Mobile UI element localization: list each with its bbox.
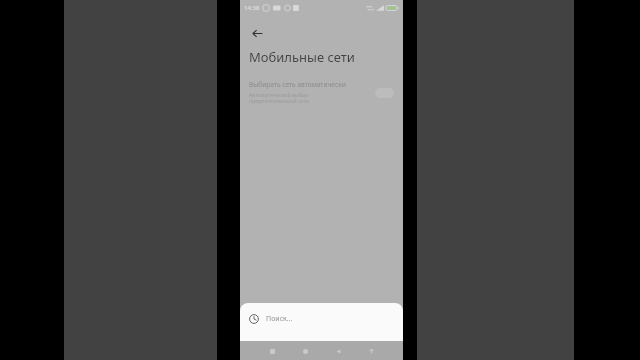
button[interactable]: Back: [331, 344, 345, 358]
button[interactable]: Home: [298, 344, 312, 358]
button[interactable]: Выбирать сеть автоматически: [249, 80, 394, 105]
staticText: Мобильные сети: [249, 48, 355, 66]
staticText: Автоматический выбор предпочтительной се…: [249, 91, 309, 105]
button[interactable]: Поиск...: [240, 303, 403, 341]
button[interactable]: Back: [246, 22, 268, 44]
button[interactable]: Recents: [265, 344, 279, 358]
staticText: Поиск...: [266, 314, 293, 324]
staticText: Выбирать сеть автоматически: [249, 80, 346, 89]
button[interactable]: Keyboard: [364, 344, 378, 358]
staticText: 14:38: [244, 4, 260, 12]
